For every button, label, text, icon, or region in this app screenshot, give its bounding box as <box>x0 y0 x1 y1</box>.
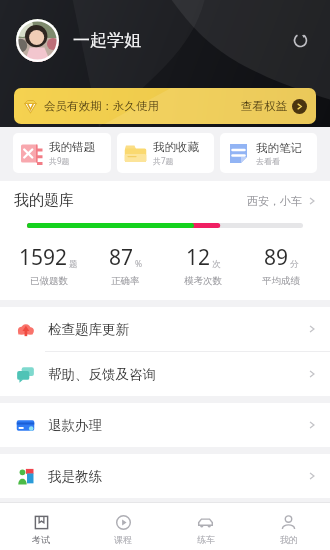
staticText: 西安，小车 <box>247 194 302 208</box>
staticText: 1592 <box>19 243 68 272</box>
staticText: 我的收藏 <box>153 140 199 154</box>
button[interactable]: Profile photo <box>16 19 59 62</box>
staticText: 我的笔记 <box>256 141 302 155</box>
button[interactable]: 考试 <box>0 509 82 545</box>
staticText: 帮助、反馈及咨询 <box>48 366 156 383</box>
button[interactable]: Refresh <box>286 26 314 54</box>
staticText: 练车 <box>197 534 215 545</box>
staticText: 89 <box>264 243 289 272</box>
button[interactable]: 我的错题 <box>13 133 111 173</box>
button[interactable]: 我的题库 <box>14 191 316 210</box>
button[interactable]: 我是教练 <box>0 454 330 498</box>
staticText: 次 <box>212 259 221 270</box>
staticText: 去看看 <box>256 156 280 166</box>
staticText: 我的错题 <box>49 140 95 154</box>
button[interactable]: 练车 <box>164 509 247 545</box>
staticText: 共7题 <box>153 155 174 166</box>
staticText: 87 <box>109 243 134 272</box>
staticText: 我的题库 <box>14 191 74 210</box>
staticText: 正确率 <box>111 275 140 287</box>
staticText: 共9题 <box>49 155 70 166</box>
staticText: 我是教练 <box>48 468 102 485</box>
staticText: 模考次数 <box>184 275 222 287</box>
staticText: 检查题库更新 <box>48 321 129 338</box>
staticText: 我的 <box>280 534 298 545</box>
staticText: 12 <box>186 243 211 272</box>
button[interactable]: 我的收藏 <box>117 133 214 173</box>
staticText: 课程 <box>114 534 132 545</box>
button[interactable]: 检查题库更新 <box>0 307 330 351</box>
staticText: 考试 <box>32 534 50 545</box>
button[interactable]: 我的笔记 <box>220 133 317 173</box>
staticText: 会员有效期：永久使用 <box>44 99 159 113</box>
staticText: 分 <box>290 259 299 270</box>
staticText: % <box>135 258 143 270</box>
button[interactable]: 帮助、反馈及咨询 <box>0 352 330 396</box>
staticText: 题 <box>69 259 78 270</box>
staticText: 平均成绩 <box>262 275 300 287</box>
staticText: 退款办理 <box>48 417 102 434</box>
staticText: 一起学姐 <box>73 30 141 51</box>
staticText: 已做题数 <box>30 275 68 287</box>
button[interactable]: 课程 <box>82 509 164 545</box>
button[interactable]: 退款办理 <box>0 403 330 447</box>
button[interactable]: 我的 <box>247 509 330 545</box>
button[interactable]: 会员有效期：永久使用 <box>14 88 316 124</box>
staticText: 查看权益 <box>241 99 287 113</box>
